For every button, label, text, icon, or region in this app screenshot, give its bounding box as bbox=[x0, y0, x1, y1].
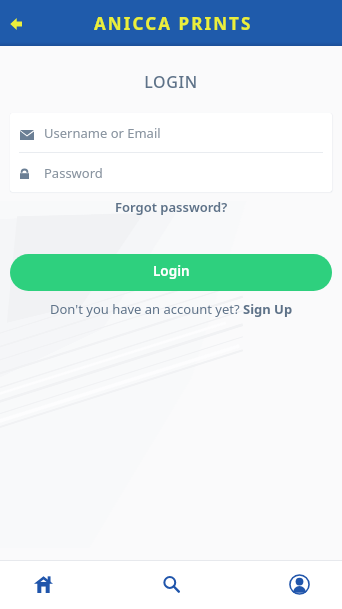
staticText: Sign Up bbox=[243, 300, 293, 318]
staticText: Username or Email bbox=[44, 124, 161, 142]
button[interactable]: Search bbox=[150, 560, 192, 609]
staticText: Password bbox=[44, 164, 103, 182]
staticText: Don't you have an account yet? bbox=[50, 300, 243, 318]
button[interactable]: Username or Email bbox=[10, 113, 332, 152]
button[interactable]: Login bbox=[10, 254, 332, 291]
button[interactable]: Password bbox=[10, 153, 332, 192]
button[interactable]: Forgot password? bbox=[109, 196, 234, 220]
staticText: Forgot password? bbox=[115, 198, 228, 216]
staticText: LOGIN bbox=[0, 71, 342, 93]
button[interactable]: Home bbox=[22, 560, 64, 609]
button[interactable]: Back bbox=[0, 8, 31, 39]
staticText: ANICCA PRINTS bbox=[94, 12, 253, 35]
button[interactable]: Account bbox=[278, 560, 320, 609]
button[interactable]: Sign Up bbox=[243, 300, 293, 318]
staticText: Login bbox=[153, 262, 190, 280]
